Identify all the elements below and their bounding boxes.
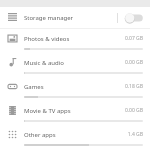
button[interactable]: Games <box>0 77 150 101</box>
staticText: Games <box>24 83 124 91</box>
staticText: Music & audio <box>24 59 124 67</box>
staticText: Movie & TV apps <box>24 107 124 115</box>
button[interactable]: Movie & TV apps <box>0 101 150 125</box>
button[interactable]: Storage manager toggle <box>123 11 145 25</box>
button[interactable]: Storage manager <box>0 7 150 28</box>
staticText: 0.07 GB <box>124 35 143 42</box>
button[interactable]: Other apps <box>0 125 150 149</box>
button[interactable]: Music & audio <box>0 53 150 77</box>
staticText: Other apps <box>24 131 127 139</box>
staticText: Photos & videos <box>24 35 124 43</box>
staticText: 0.18 GB <box>124 83 143 90</box>
staticText: 0.00 GB <box>124 59 143 66</box>
staticText: 1.4 GB <box>127 131 143 138</box>
staticText: Storage manager <box>24 14 117 22</box>
staticText: 0.00 GB <box>124 107 143 114</box>
button[interactable]: Photos & videos <box>0 29 150 53</box>
